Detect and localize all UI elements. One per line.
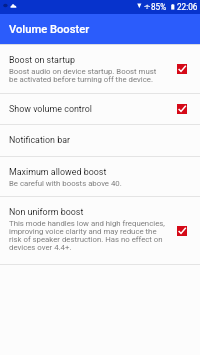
staticText: Boost on startup: [9, 55, 75, 65]
staticText: 22:06: [177, 2, 198, 12]
button[interactable]: Non uniform boost: [172, 197, 192, 264]
staticText: Boost audio on device startup. Boost mus…: [9, 67, 166, 84]
staticText: Notification bar: [9, 135, 70, 145]
button[interactable]: Show volume control: [0, 94, 200, 124]
staticText: This mode handles low and high frequenci…: [9, 219, 166, 252]
staticText: 85%: [151, 2, 167, 12]
staticText: Volume Booster: [9, 23, 90, 36]
button[interactable]: Maximum allowed boost: [0, 157, 200, 196]
staticText: Be careful with boosts above 40.: [9, 179, 122, 188]
button[interactable]: Boost on startup: [0, 45, 200, 93]
staticText: Show volume control: [9, 104, 92, 114]
button[interactable]: Notification bar: [0, 125, 200, 156]
staticText: Maximum allowed boost: [9, 167, 107, 177]
button[interactable]: Boost on startup: [172, 45, 192, 93]
button[interactable]: Non uniform boost: [0, 197, 200, 264]
staticText: Non uniform boost: [9, 207, 84, 217]
button[interactable]: Show volume control: [172, 94, 192, 124]
